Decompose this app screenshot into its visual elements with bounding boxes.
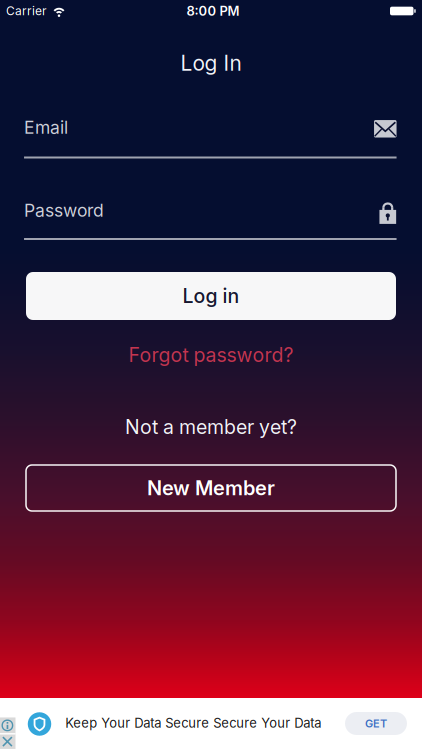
staticText: Carrier bbox=[6, 4, 47, 18]
staticText: 8:00 PM bbox=[186, 3, 239, 19]
staticText: Log In bbox=[180, 50, 241, 76]
staticText: Forgot password? bbox=[128, 343, 293, 367]
staticText: Log in bbox=[182, 284, 239, 308]
staticText: New Member bbox=[147, 476, 275, 500]
staticText: Password bbox=[24, 200, 104, 221]
staticText: Keep Your Data Secure Secure Your Data bbox=[65, 715, 321, 731]
staticText: GET bbox=[365, 717, 387, 730]
staticText: Email bbox=[24, 117, 68, 138]
staticText: Not a member yet? bbox=[125, 415, 297, 439]
